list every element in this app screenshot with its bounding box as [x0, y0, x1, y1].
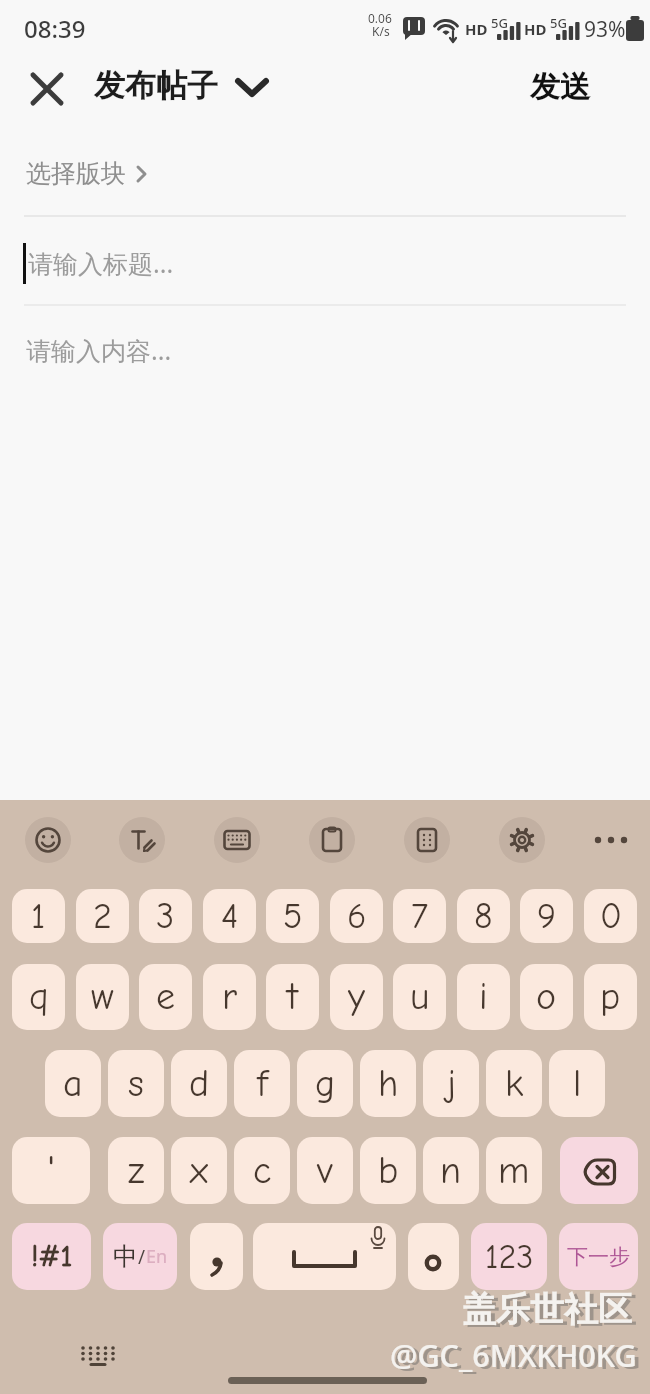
staticText: 4: [221, 896, 239, 937]
staticText: /: [138, 1244, 146, 1270]
staticText: HD: [465, 19, 488, 39]
button[interactable]: [0, 306, 650, 396]
button[interactable]: 中: [103, 1223, 177, 1290]
button[interactable]: [119, 817, 165, 863]
button[interactable]: d: [171, 1050, 227, 1117]
button[interactable]: l: [549, 1050, 605, 1117]
button[interactable]: 5: [266, 889, 319, 943]
button[interactable]: r: [203, 964, 256, 1030]
staticText: q: [29, 975, 49, 1019]
button[interactable]: z: [108, 1137, 164, 1204]
button[interactable]: [72, 1336, 124, 1376]
staticText: 123: [485, 1237, 534, 1276]
button[interactable]: 6: [330, 889, 383, 943]
button[interactable]: j: [423, 1050, 479, 1117]
staticText: 发布帖子: [94, 66, 218, 105]
staticText: 请输入内容...: [26, 333, 172, 367]
button[interactable]: g: [297, 1050, 353, 1117]
button[interactable]: o: [520, 964, 573, 1030]
staticText: o: [536, 975, 557, 1019]
staticText: r: [222, 975, 238, 1019]
button[interactable]: 7: [393, 889, 446, 943]
button[interactable]: ': [12, 1137, 90, 1204]
staticText: ': [47, 1147, 56, 1195]
button[interactable]: [499, 817, 545, 863]
button[interactable]: i: [457, 964, 510, 1030]
staticText: i: [479, 975, 488, 1019]
button[interactable]: a: [45, 1050, 101, 1117]
staticText: b: [378, 1149, 399, 1193]
button[interactable]: t: [266, 964, 319, 1030]
staticText: s: [128, 1062, 144, 1106]
button[interactable]: 发布帖子: [94, 66, 254, 105]
button[interactable]: [560, 1137, 638, 1204]
staticText: e: [156, 975, 176, 1019]
button[interactable]: [309, 817, 355, 863]
button[interactable]: k: [486, 1050, 542, 1117]
button[interactable]: c: [234, 1137, 290, 1204]
staticText: 5G: [550, 14, 567, 32]
staticText: 2: [93, 896, 112, 937]
button[interactable]: m: [486, 1137, 542, 1204]
staticText: 1: [31, 896, 46, 937]
button[interactable]: w: [76, 964, 129, 1030]
button[interactable]: 下一步: [559, 1223, 638, 1290]
staticText: HD: [524, 19, 547, 39]
button[interactable]: [0, 217, 650, 304]
staticText: 选择版块: [26, 158, 126, 189]
staticText: z: [128, 1149, 145, 1193]
button[interactable]: [588, 820, 638, 860]
button[interactable]: [408, 1223, 459, 1290]
staticText: 7: [411, 896, 429, 937]
staticText: 6: [347, 896, 367, 937]
button[interactable]: f: [234, 1050, 290, 1117]
staticText: f: [257, 1062, 268, 1106]
button[interactable]: q: [12, 964, 65, 1030]
button[interactable]: y: [330, 964, 383, 1030]
button[interactable]: v: [297, 1137, 353, 1204]
staticText: p: [600, 975, 621, 1019]
staticText: y: [348, 975, 365, 1019]
button[interactable]: e: [139, 964, 192, 1030]
button[interactable]: 1: [12, 889, 65, 943]
button[interactable]: 2: [76, 889, 129, 943]
button[interactable]: [25, 817, 71, 863]
button[interactable]: 发送: [515, 62, 605, 112]
button[interactable]: n: [423, 1137, 479, 1204]
staticText: 5: [283, 896, 303, 937]
button[interactable]: 4: [203, 889, 256, 943]
button[interactable]: [18, 60, 76, 118]
button[interactable]: s: [108, 1050, 164, 1117]
button[interactable]: u: [393, 964, 446, 1030]
button[interactable]: x: [171, 1137, 227, 1204]
staticText: 盖乐世社区: [466, 1290, 636, 1333]
button[interactable]: b: [360, 1137, 416, 1204]
staticText: 0: [600, 896, 622, 937]
staticText: 93%: [584, 15, 626, 44]
staticText: t: [287, 975, 298, 1019]
staticText: 08:39: [24, 12, 86, 45]
button[interactable]: [214, 817, 260, 863]
staticText: 8: [474, 896, 493, 937]
staticText: @GC_6MXKH0KG: [390, 1334, 637, 1376]
button[interactable]: p: [584, 964, 637, 1030]
staticText: c: [253, 1149, 272, 1193]
staticText: h: [378, 1062, 399, 1106]
button[interactable]: [253, 1223, 396, 1290]
staticText: j: [447, 1062, 456, 1106]
button[interactable]: [190, 1223, 243, 1290]
staticText: K/s: [372, 23, 390, 39]
staticText: 0.06: [368, 10, 392, 26]
staticText: !#1: [31, 1239, 73, 1274]
button[interactable]: 0: [584, 889, 637, 943]
button[interactable]: 选择版块: [26, 158, 140, 189]
button[interactable]: !#1: [12, 1223, 91, 1290]
button[interactable]: 8: [457, 889, 510, 943]
button[interactable]: 9: [520, 889, 573, 943]
button[interactable]: 123: [471, 1223, 547, 1290]
button[interactable]: 3: [139, 889, 192, 943]
button[interactable]: h: [360, 1050, 416, 1117]
button[interactable]: [404, 817, 450, 863]
staticText: 发送: [530, 68, 590, 106]
staticText: a: [63, 1062, 83, 1106]
